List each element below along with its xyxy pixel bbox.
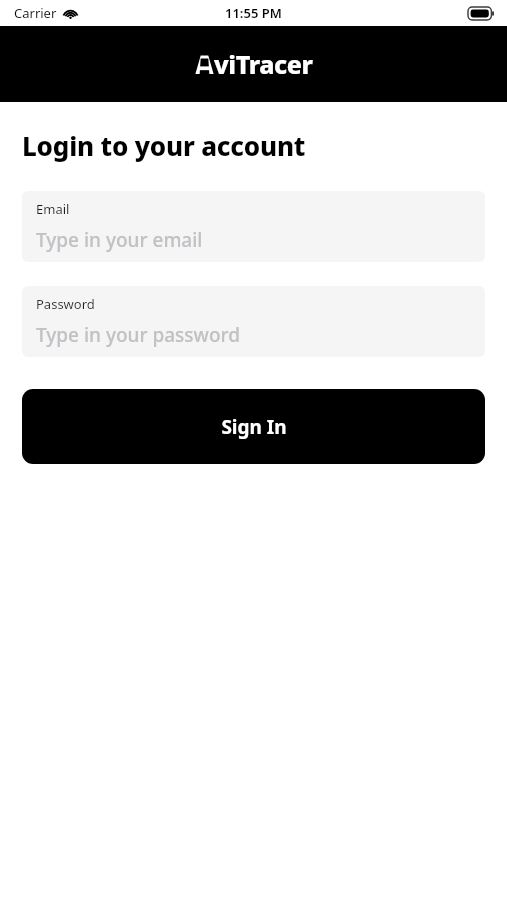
- staticText: Type in your password: [36, 322, 240, 348]
- staticText: Type in your email: [36, 227, 203, 253]
- staticText: Carrier: [14, 4, 57, 22]
- staticText: Login to your account: [22, 128, 306, 163]
- button[interactable]: Password: [22, 286, 485, 357]
- staticText: Sign In: [221, 414, 287, 440]
- staticText: 11:55 PM: [225, 4, 282, 22]
- staticText: Password: [36, 295, 95, 313]
- button[interactable]: Sign In: [22, 389, 485, 464]
- button[interactable]: Email: [22, 191, 485, 262]
- staticText: Email: [36, 200, 70, 218]
- staticText: viTracer: [214, 47, 313, 81]
